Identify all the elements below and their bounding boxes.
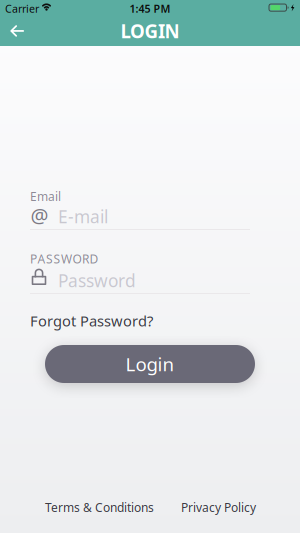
staticText: LOGIN — [120, 19, 179, 43]
staticText: Privacy Policy — [181, 499, 256, 515]
staticText: Forgot Password? — [30, 311, 153, 330]
button[interactable]: Back — [0, 16, 36, 46]
staticText: Carrier — [5, 1, 39, 16]
staticText: Terms & Conditions — [45, 499, 154, 515]
staticText: Password — [58, 269, 136, 292]
staticText: @ — [30, 202, 48, 229]
button[interactable]: Privacy Policy — [181, 499, 256, 515]
button[interactable]: Forgot Password? — [30, 311, 153, 330]
staticText: 1:45 PM — [129, 1, 170, 16]
staticText: Email — [30, 188, 61, 204]
button[interactable]: Terms & Conditions — [45, 499, 154, 515]
button[interactable]: Login — [45, 345, 255, 383]
staticText: PASSWORD — [30, 251, 98, 267]
staticText: E-mail — [58, 205, 108, 228]
staticText: Login — [125, 352, 174, 376]
